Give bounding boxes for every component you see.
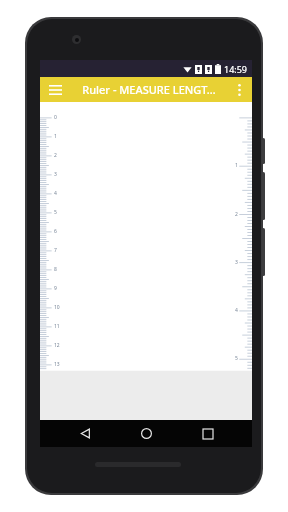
staticText: 3 — [235, 259, 238, 266]
staticText: 3 — [54, 171, 57, 178]
staticText: 2 — [54, 152, 57, 159]
staticText: 8 — [54, 266, 57, 273]
staticText: 10 — [54, 304, 60, 311]
staticText: 7 — [54, 247, 57, 254]
staticText: 5 — [54, 209, 57, 216]
staticText: 5 — [235, 355, 238, 362]
staticText: 6 — [54, 228, 57, 235]
staticText: 13 — [54, 361, 60, 368]
button[interactable]: Recent apps — [191, 420, 225, 447]
staticText: 4 — [54, 190, 57, 197]
staticText: 9 — [54, 285, 57, 292]
staticText: 11 — [54, 323, 60, 330]
staticText: 12 — [54, 342, 60, 349]
button[interactable]: Home — [129, 420, 163, 447]
staticText: 0 — [54, 114, 57, 121]
button[interactable]: More options — [230, 81, 248, 99]
staticText: 2 — [235, 211, 238, 218]
staticText: Ruler - MEASURE LENGT… — [82, 82, 216, 97]
staticText: 14:59 — [224, 63, 248, 75]
staticText: 1 — [235, 162, 238, 169]
button[interactable]: Back — [68, 420, 102, 447]
staticText: 4 — [235, 307, 238, 314]
staticText: 1 — [54, 133, 57, 140]
button[interactable]: Open navigation menu — [45, 80, 65, 100]
button[interactable] — [40, 102, 252, 420]
